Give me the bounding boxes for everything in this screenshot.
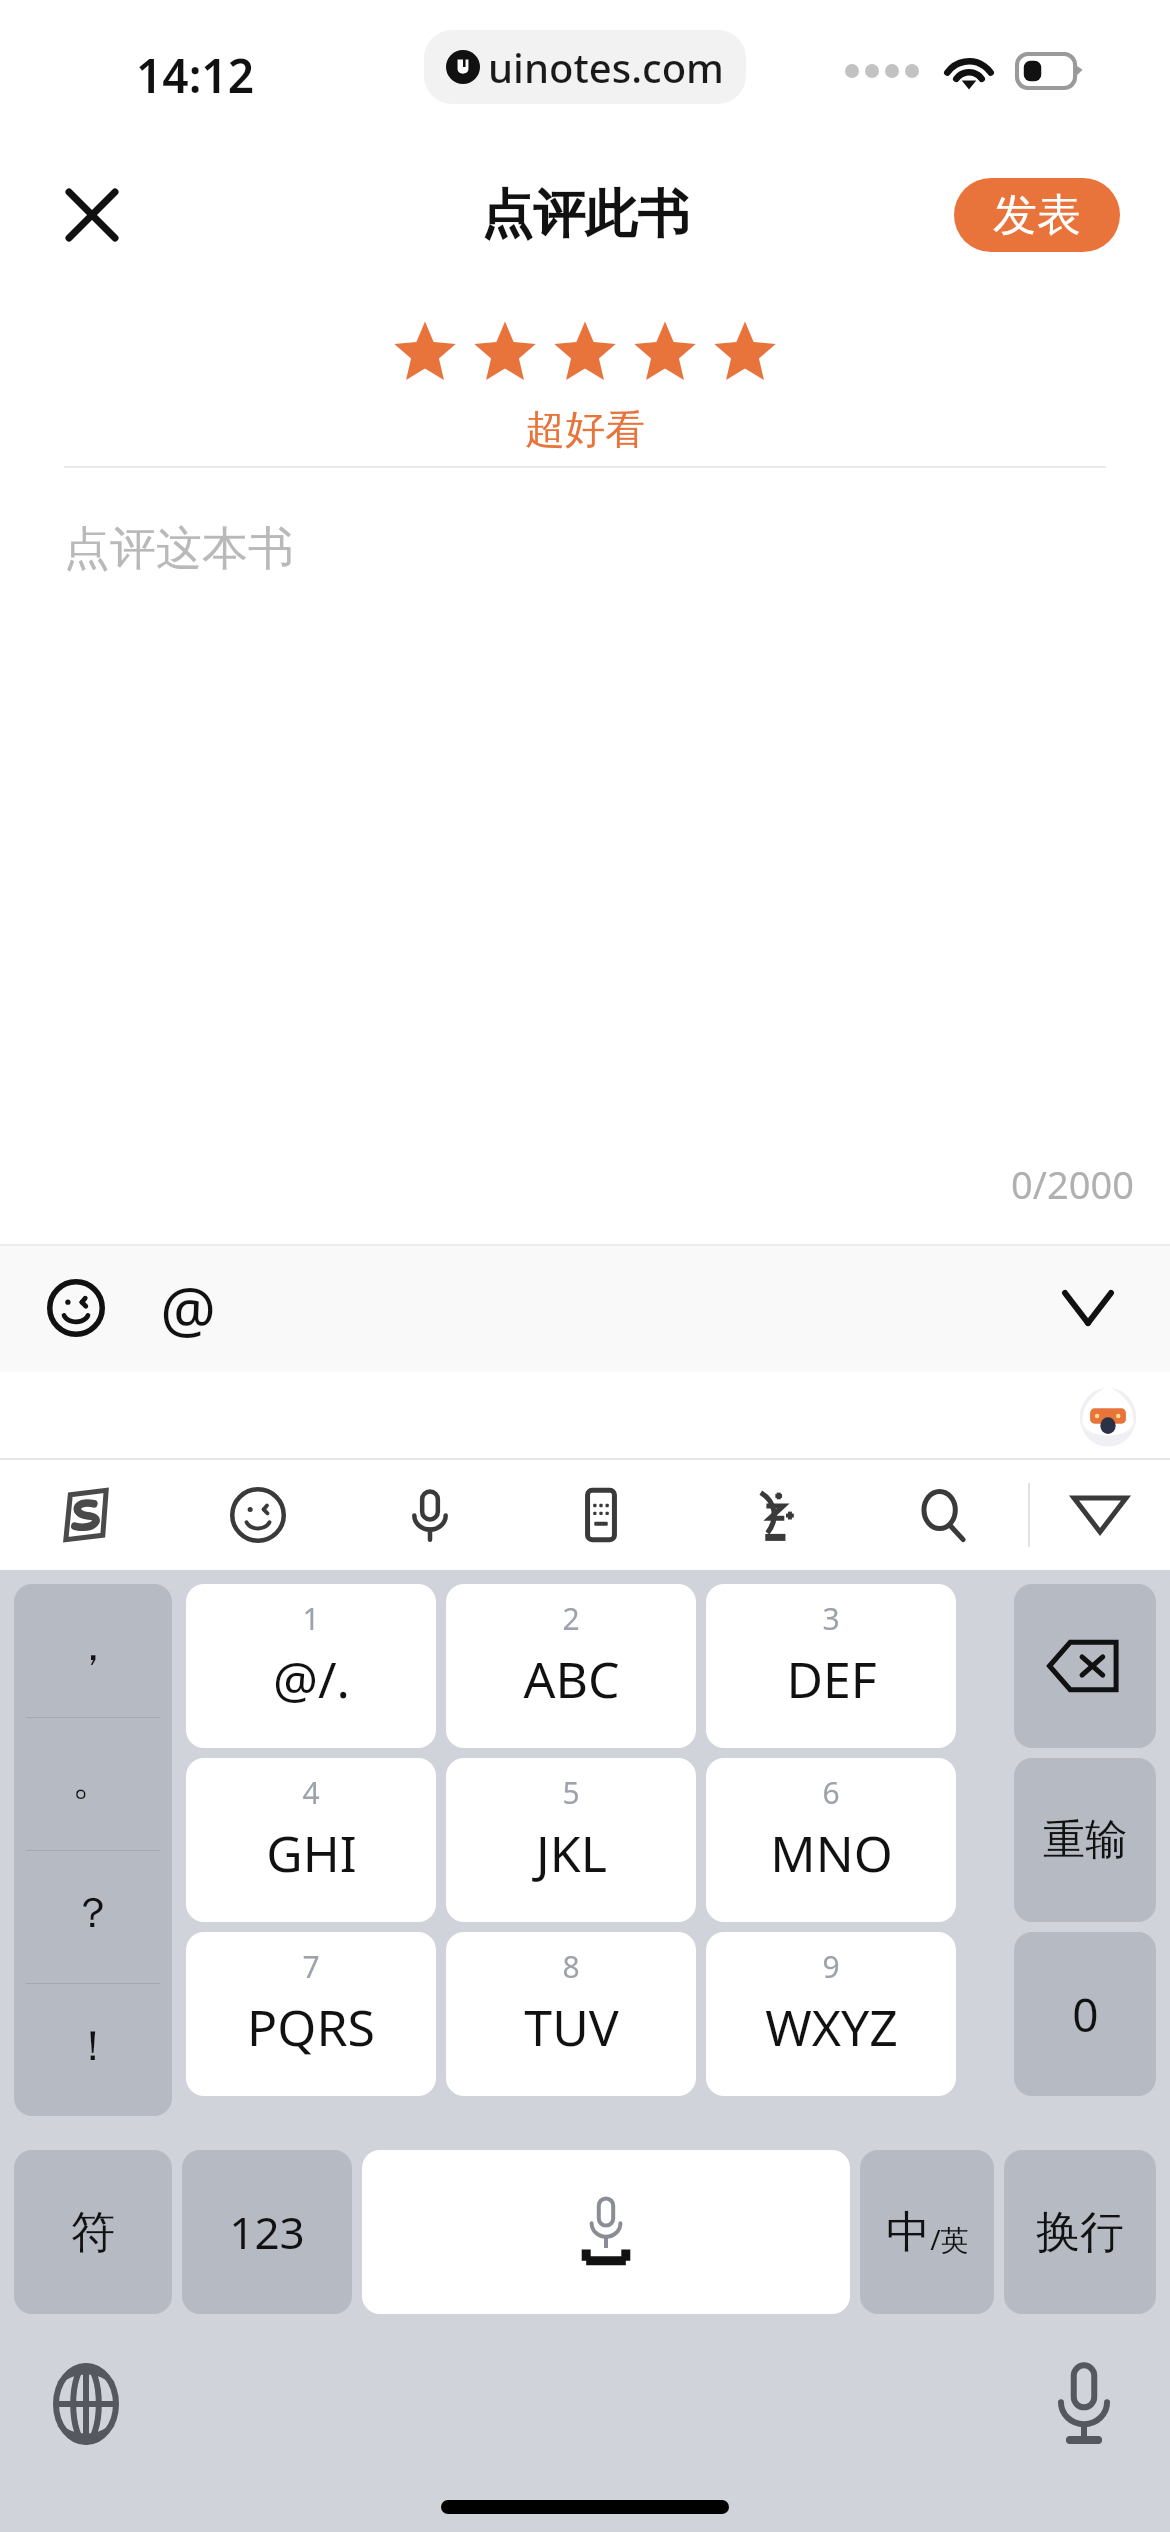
staticText: 6 [822,1772,840,1813]
staticText: 符 [71,2205,115,2260]
button[interactable]: 123 [182,2150,352,2314]
button[interactable] [625,316,705,388]
staticText: @/. [273,1645,350,1713]
button[interactable]: Mention [140,1260,236,1356]
button[interactable]: 1 [186,1584,436,1748]
staticText: 2 [562,1598,580,1639]
button[interactable]: 中 [860,2150,994,2314]
staticText: 8 [562,1946,580,1987]
staticText: 点评这本书 [64,520,294,578]
button[interactable]: Voice input [344,1460,515,1570]
staticText: 9 [822,1946,840,1987]
button[interactable]: Hide keyboard [1030,1460,1170,1570]
staticText: 5 [562,1772,580,1813]
staticText: ？ [72,1887,114,1940]
staticText: PQRS [247,1993,375,2061]
staticText: TUV [524,1993,619,2061]
button[interactable]: 2 [446,1584,696,1748]
staticText: 14:12 [136,44,254,107]
staticText: ！ [72,2020,114,2073]
button[interactable] [545,316,625,388]
button[interactable]: 7 [186,1932,436,2096]
staticText: GHI [266,1819,357,1887]
staticText: 3 [822,1598,840,1639]
button[interactable]: 重输 [1014,1758,1156,1922]
button[interactable]: Collapse keyboard [1042,1262,1134,1354]
staticText: 超好看 [525,404,645,454]
staticText: 0/2000 [1011,1158,1134,1210]
button[interactable]: ， [14,1584,172,2116]
button[interactable]: Sogou [0,1460,172,1570]
button[interactable]: Switch language [36,2354,136,2454]
staticText: JKL [536,1819,607,1887]
staticText: 。 [72,1754,114,1807]
staticText: 7 [302,1946,320,1987]
staticText: 发表 [993,188,1081,243]
staticText: ， [72,1620,114,1673]
staticText: 点评此书 [481,182,689,248]
staticText: DEF [786,1645,877,1713]
button[interactable] [385,316,465,388]
staticText: @ [160,1266,216,1350]
button[interactable]: Backspace [1014,1584,1156,1748]
button[interactable]: Sogou assistant [1076,1384,1140,1448]
button[interactable]: 符 [14,2150,172,2314]
button[interactable]: Handwriting [686,1460,857,1570]
button[interactable] [705,316,785,388]
button[interactable]: 5 [446,1758,696,1922]
staticText: 123 [229,2202,305,2262]
staticText: 重输 [1043,1814,1127,1867]
staticText: uinotes.com [488,40,724,94]
staticText: 4 [302,1772,320,1813]
button[interactable]: Search [857,1460,1028,1570]
staticText: MNO [770,1819,893,1887]
button[interactable]: 6 [706,1758,956,1922]
button[interactable]: Emoji [172,1460,344,1570]
button[interactable]: 发表 [954,178,1120,252]
staticText: /英 [930,2220,969,2258]
button[interactable]: 换行 [1004,2150,1156,2314]
button[interactable]: Dictation [1034,2354,1134,2454]
button[interactable] [465,316,545,388]
button[interactable]: Keyboard layout [515,1460,686,1570]
staticText: 换行 [1036,2205,1124,2260]
button[interactable]: Emoji [28,1260,124,1356]
staticText: WXYZ [765,1993,898,2061]
button[interactable]: Voice space [362,2150,850,2314]
button[interactable]: 4 [186,1758,436,1922]
button[interactable]: 3 [706,1584,956,1748]
staticText: ABC [523,1645,620,1713]
staticText: 0 [1072,1983,1099,2046]
button[interactable]: Close [50,173,134,257]
button[interactable]: 9 [706,1932,956,2096]
button[interactable]: 0 [1014,1932,1156,2096]
staticText: 1 [302,1598,320,1639]
staticText: 中 [886,2205,930,2260]
button[interactable]: 8 [446,1932,696,2096]
